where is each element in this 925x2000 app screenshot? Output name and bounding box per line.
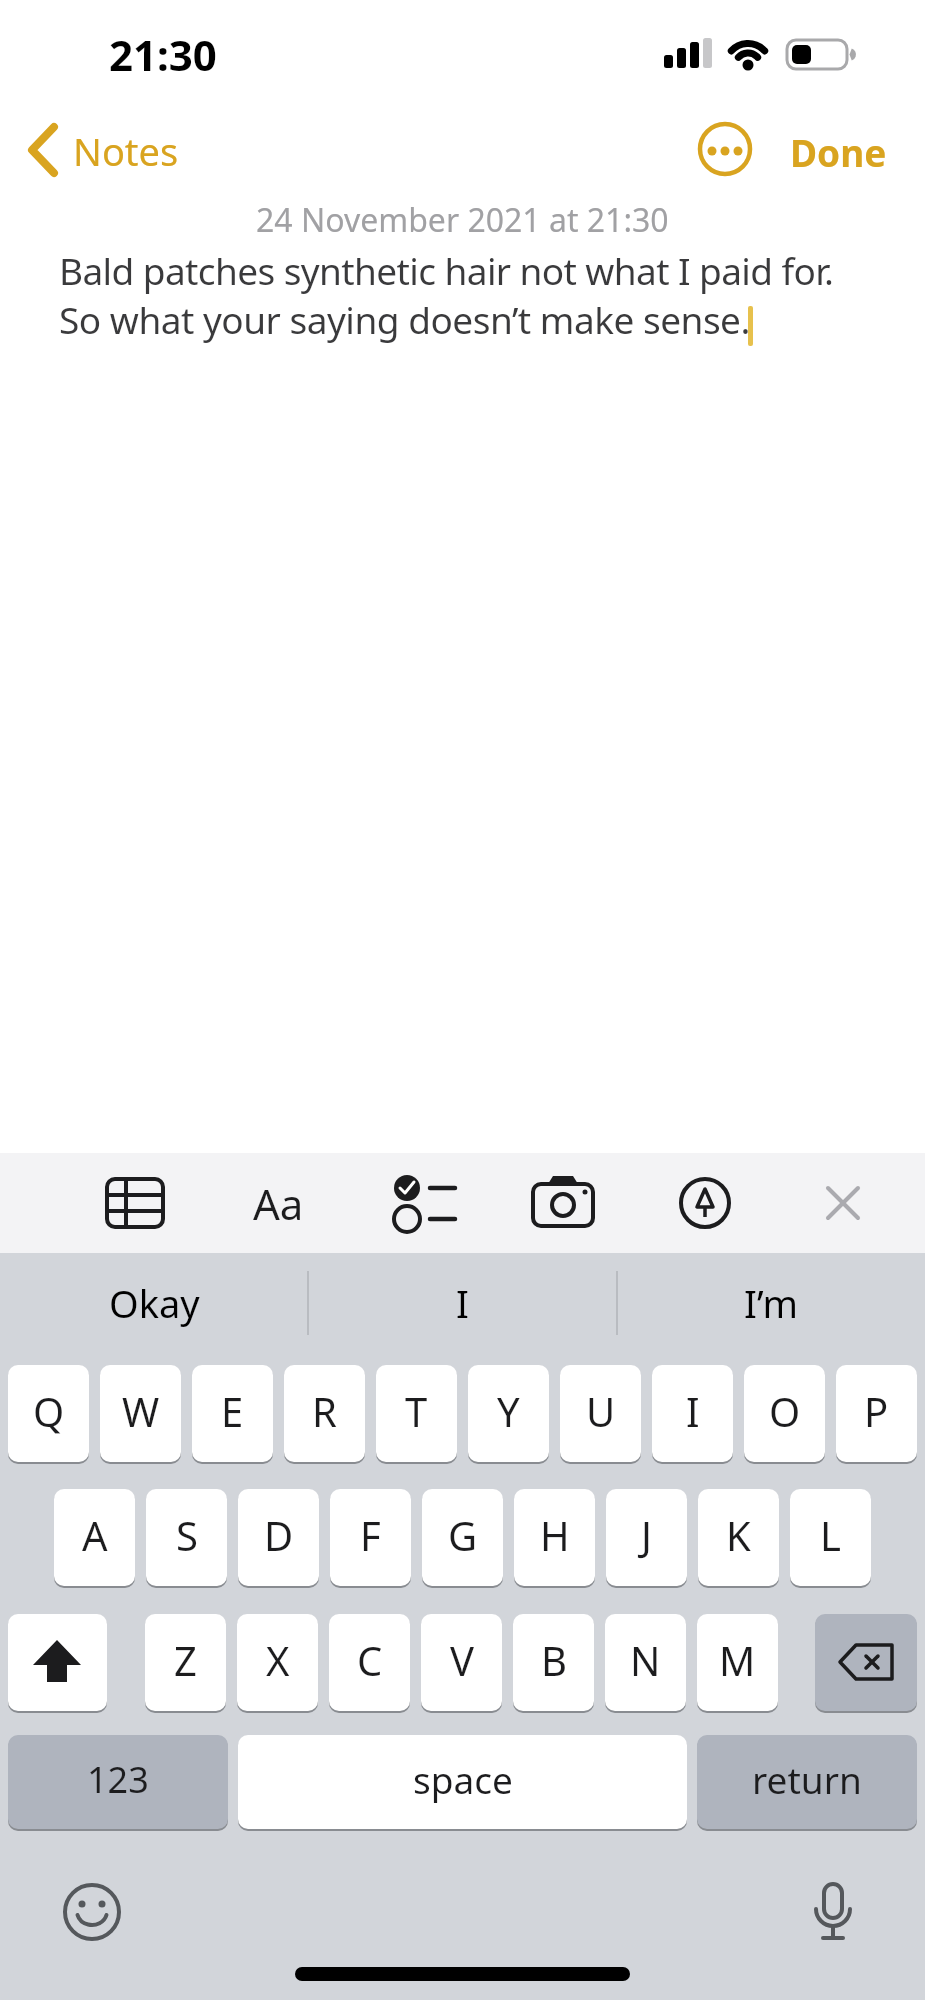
button[interactable]: space [238, 1735, 687, 1829]
button[interactable] [815, 1614, 917, 1711]
staticText: F [360, 1508, 381, 1562]
button[interactable] [800, 1878, 868, 1946]
staticText: Z [174, 1633, 197, 1687]
button[interactable]: A [54, 1489, 135, 1586]
staticText: Aa [253, 1175, 304, 1232]
button[interactable]: D [238, 1489, 319, 1586]
staticText: U [586, 1384, 616, 1438]
button[interactable]: O [744, 1365, 825, 1462]
staticText: Done [790, 127, 887, 177]
staticText: G [448, 1508, 478, 1562]
button[interactable]: P [836, 1365, 917, 1462]
button[interactable]: I’m [617, 1253, 925, 1353]
button[interactable] [528, 1168, 598, 1238]
button[interactable]: R [284, 1365, 365, 1462]
button[interactable] [385, 1168, 455, 1238]
button[interactable] [808, 1168, 878, 1238]
staticText: So what your saying doesn’t make sense. [59, 294, 750, 344]
staticText: D [264, 1508, 294, 1562]
button[interactable]: Notes [20, 118, 190, 180]
staticText: return [752, 1754, 862, 1804]
button[interactable]: J [606, 1489, 687, 1586]
staticText: Y [497, 1384, 520, 1438]
staticText: N [630, 1633, 661, 1687]
staticText: C [357, 1633, 383, 1687]
staticText: J [641, 1508, 652, 1562]
staticText: E [221, 1384, 244, 1438]
button[interactable]: Aa [238, 1168, 318, 1238]
button[interactable]: V [421, 1614, 502, 1711]
staticText: 123 [87, 1755, 149, 1804]
button[interactable]: 123 [8, 1735, 228, 1829]
button[interactable]: return [697, 1735, 917, 1829]
staticText: K [726, 1508, 751, 1562]
button[interactable] [698, 122, 752, 176]
staticText: M [719, 1633, 756, 1687]
button[interactable]: C [329, 1614, 410, 1711]
staticText: Q [33, 1384, 65, 1438]
staticText: 21:30 [109, 26, 217, 83]
staticText: X [266, 1633, 290, 1687]
staticText: W [122, 1384, 160, 1438]
staticText: I’m [744, 1277, 798, 1329]
staticText: space [413, 1754, 513, 1804]
staticText: V [450, 1633, 474, 1687]
button[interactable]: S [146, 1489, 227, 1586]
button[interactable]: K [698, 1489, 779, 1586]
button[interactable]: F [330, 1489, 411, 1586]
staticText: I [456, 1277, 469, 1329]
button[interactable]: M [697, 1614, 778, 1711]
staticText: Okay [109, 1277, 200, 1329]
button[interactable]: Done [780, 118, 900, 180]
staticText: P [864, 1384, 889, 1438]
button[interactable]: U [560, 1365, 641, 1462]
staticText: A [82, 1508, 108, 1562]
staticText: Bald patches synthetic hair not what I p… [59, 245, 834, 295]
staticText: 24 November 2021 at 21:30 [256, 198, 669, 238]
button[interactable]: G [422, 1489, 503, 1586]
staticText: O [769, 1384, 801, 1438]
button[interactable] [58, 1878, 126, 1946]
staticText: S [176, 1508, 198, 1562]
button[interactable]: L [790, 1489, 871, 1586]
button[interactable]: Q [8, 1365, 89, 1462]
button[interactable]: E [192, 1365, 273, 1462]
button[interactable]: I [652, 1365, 733, 1462]
button[interactable]: Z [145, 1614, 226, 1711]
button[interactable]: Y [468, 1365, 549, 1462]
button[interactable]: Okay [0, 1253, 308, 1353]
button[interactable] [670, 1168, 740, 1238]
staticText: Notes [73, 125, 179, 177]
staticText: I [686, 1384, 700, 1438]
button[interactable]: N [605, 1614, 686, 1711]
staticText: H [540, 1508, 570, 1562]
staticText: T [405, 1384, 428, 1438]
button[interactable]: W [100, 1365, 181, 1462]
staticText: L [820, 1508, 841, 1562]
button[interactable]: H [514, 1489, 595, 1586]
button[interactable]: B [513, 1614, 594, 1711]
button[interactable]: X [237, 1614, 318, 1711]
button[interactable] [100, 1168, 170, 1238]
button[interactable]: T [376, 1365, 457, 1462]
staticText: R [312, 1384, 337, 1438]
staticText: B [541, 1633, 567, 1687]
button[interactable] [8, 1614, 107, 1711]
button[interactable]: I [308, 1253, 617, 1353]
